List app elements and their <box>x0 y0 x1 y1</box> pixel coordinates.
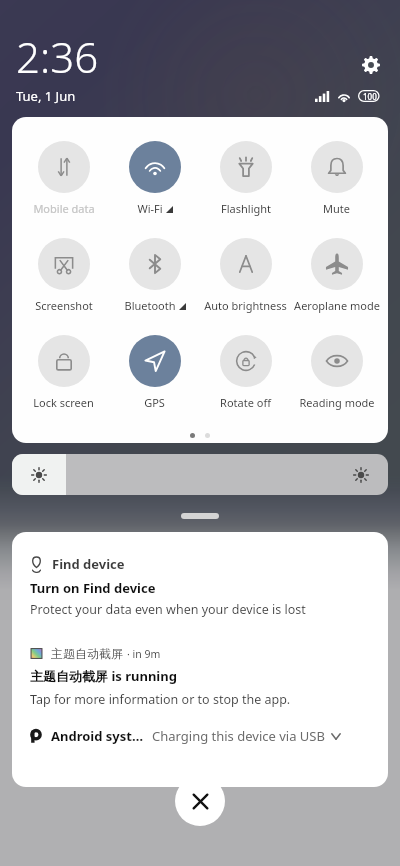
button[interactable]: Close notifications <box>175 776 225 826</box>
button[interactable]: Auto brightness <box>200 238 291 313</box>
staticText: Protect your data even when your device … <box>30 601 306 618</box>
button[interactable]: Brightness <box>12 454 388 495</box>
button[interactable]: Mute <box>291 141 382 216</box>
staticText: 主题自动截屏 <box>51 646 123 661</box>
button[interactable]: Mobile data <box>18 141 109 216</box>
button[interactable]: Reading mode <box>291 335 382 410</box>
button[interactable]: Screenshot <box>18 238 109 313</box>
button[interactable]: GPS <box>109 335 200 410</box>
staticText: Wi-Fi <box>137 201 163 216</box>
button[interactable]: Bluetooth <box>109 238 200 313</box>
staticText: Turn on Find device <box>30 579 156 597</box>
staticText: Lock screen <box>33 395 94 410</box>
staticText: 2:36 <box>16 28 99 85</box>
staticText: Flashlight <box>221 201 271 216</box>
button[interactable]: Flashlight <box>200 141 291 216</box>
staticText: Find device <box>52 555 125 573</box>
button[interactable]: Aeroplane mode <box>291 238 382 313</box>
staticText: Mute <box>323 201 350 216</box>
staticText: Auto brightness <box>204 298 287 313</box>
staticText: Mobile data <box>33 201 95 216</box>
staticText: GPS <box>144 395 165 410</box>
button[interactable]: Android syst… <box>12 723 388 749</box>
staticText: · in 9m <box>127 647 161 661</box>
staticText: Reading mode <box>299 395 375 410</box>
staticText: Aeroplane mode <box>294 298 380 313</box>
staticText: Bluetooth <box>124 298 176 313</box>
staticText: 主题自动截屏 is running <box>30 667 177 685</box>
staticText: Charging this device via USB <box>152 727 325 745</box>
button[interactable]: Find device <box>12 553 388 620</box>
button[interactable]: 主题自动截屏 <box>12 644 388 710</box>
staticText: 100 <box>363 91 377 102</box>
button[interactable]: Wi-Fi <box>109 141 200 216</box>
staticText: Tap for more information or to stop the … <box>30 691 291 708</box>
staticText: Android syst… <box>51 727 144 745</box>
staticText: Screenshot <box>35 298 93 313</box>
staticText: Tue, 1 Jun <box>16 87 76 105</box>
staticText: Rotate off <box>220 395 271 410</box>
button[interactable]: Rotate off <box>200 335 291 410</box>
button[interactable]: Lock screen <box>18 335 109 410</box>
button[interactable]: Settings <box>358 52 384 78</box>
